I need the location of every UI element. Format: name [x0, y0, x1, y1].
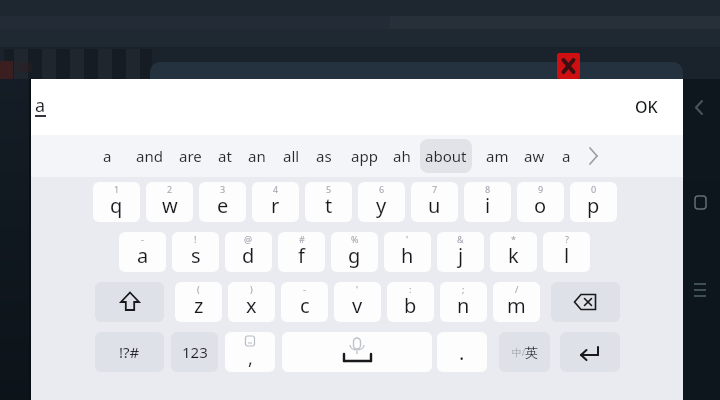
- button[interactable]: aw: [510, 135, 558, 177]
- staticText: 4: [273, 183, 279, 195]
- staticText: 3: [220, 183, 226, 195]
- button[interactable]: 4: [252, 182, 299, 222]
- staticText: d: [242, 242, 255, 269]
- button[interactable]: 9: [517, 182, 564, 222]
- staticText: o: [534, 192, 547, 219]
- button[interactable]: -: [281, 282, 328, 322]
- button[interactable]: ah: [378, 135, 426, 177]
- button[interactable]: .: [437, 332, 487, 372]
- staticText: 7: [432, 183, 438, 195]
- staticText: -: [141, 233, 144, 245]
- staticText: /: [522, 347, 525, 358]
- staticText: v: [352, 292, 363, 319]
- button[interactable]: ': [334, 282, 381, 322]
- button[interactable]: [557, 53, 580, 79]
- button[interactable]: [95, 282, 164, 322]
- staticText: 中: [512, 346, 522, 359]
- staticText: aw: [524, 146, 545, 166]
- button[interactable]: :: [387, 282, 434, 322]
- button[interactable]: %: [331, 232, 378, 272]
- button[interactable]: am: [473, 135, 521, 177]
- button[interactable]: are: [166, 135, 214, 177]
- staticText: ': [356, 283, 359, 295]
- button[interactable]: *: [490, 232, 537, 272]
- staticText: t: [325, 192, 333, 219]
- button[interactable]: [551, 282, 620, 322]
- staticText: r: [271, 192, 280, 219]
- button[interactable]: an: [233, 135, 281, 177]
- button[interactable]: !?#: [95, 332, 164, 372]
- button[interactable]: ?: [543, 232, 590, 272]
- staticText: 1: [114, 183, 120, 195]
- staticText: 9: [538, 183, 544, 195]
- staticText: 2: [167, 183, 173, 195]
- button[interactable]: (: [175, 282, 222, 322]
- staticText: x: [246, 292, 257, 319]
- staticText: a: [562, 146, 571, 166]
- staticText: j: [458, 242, 464, 269]
- button[interactable]: 8: [464, 182, 511, 222]
- staticText: h: [401, 242, 414, 269]
- button[interactable]: as: [300, 135, 348, 177]
- button[interactable]: -: [119, 232, 166, 272]
- staticText: &: [457, 233, 464, 245]
- button[interactable]: 0: [570, 182, 617, 222]
- button[interactable]: 7: [411, 182, 458, 222]
- button[interactable]: 123: [171, 332, 218, 372]
- staticText: u: [428, 192, 441, 219]
- staticText: n: [457, 292, 470, 319]
- button[interactable]: 中: [499, 332, 550, 372]
- button[interactable]: 3: [199, 182, 246, 222]
- staticText: .: [459, 339, 465, 366]
- button[interactable]: &: [437, 232, 484, 272]
- button[interactable]: 6: [358, 182, 405, 222]
- staticText: app: [351, 146, 378, 166]
- staticText: !?#: [119, 342, 140, 362]
- staticText: 6: [379, 183, 385, 195]
- staticText: as: [316, 146, 332, 166]
- staticText: OK: [635, 96, 658, 118]
- button[interactable]: #: [278, 232, 325, 272]
- button[interactable]: [576, 139, 610, 173]
- button[interactable]: about: [422, 135, 470, 177]
- staticText: m: [507, 292, 526, 319]
- button[interactable]: a: [83, 135, 131, 177]
- staticText: ': [406, 233, 409, 245]
- button[interactable]: a: [542, 135, 590, 177]
- staticText: am: [486, 146, 509, 166]
- button[interactable]: ,: [225, 332, 275, 372]
- staticText: ;: [462, 283, 465, 295]
- button[interactable]: ;: [440, 282, 487, 322]
- staticText: #: [299, 233, 305, 245]
- button[interactable]: 2: [146, 182, 193, 222]
- button[interactable]: 1: [93, 182, 140, 222]
- staticText: 5: [326, 183, 332, 195]
- button[interactable]: at: [201, 135, 249, 177]
- staticText: a: [137, 242, 149, 269]
- button[interactable]: ': [384, 232, 431, 272]
- button[interactable]: all: [267, 135, 315, 177]
- staticText: a: [35, 93, 46, 118]
- button[interactable]: !: [172, 232, 219, 272]
- staticText: p: [587, 192, 600, 219]
- staticText: ?: [565, 233, 569, 245]
- button[interactable]: OK: [615, 93, 677, 121]
- button[interactable]: [560, 332, 620, 372]
- staticText: a: [103, 146, 112, 166]
- staticText: q: [110, 192, 123, 219]
- button[interactable]: /: [493, 282, 540, 322]
- staticText: i: [485, 192, 491, 219]
- button[interactable]: 5: [305, 182, 352, 222]
- staticText: 英: [525, 344, 538, 360]
- button[interactable]: [282, 332, 432, 372]
- staticText: y: [376, 192, 387, 219]
- staticText: at: [218, 146, 232, 166]
- staticText: ,: [248, 346, 253, 371]
- staticText: l: [564, 242, 570, 269]
- button[interactable]: app: [340, 135, 388, 177]
- staticText: *: [511, 233, 516, 245]
- button[interactable]: ): [228, 282, 275, 322]
- staticText: (: [197, 283, 200, 295]
- button[interactable]: and: [125, 135, 173, 177]
- button[interactable]: @: [225, 232, 272, 272]
